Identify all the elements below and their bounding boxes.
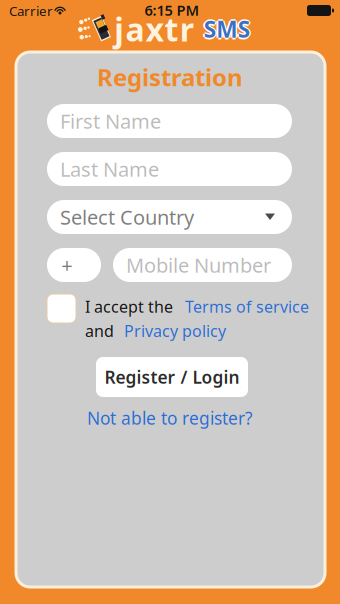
staticText: Carrier: [9, 2, 53, 20]
button[interactable]: +: [47, 248, 101, 282]
button[interactable]: Mobile Number: [113, 248, 292, 282]
staticText: SMS: [204, 12, 250, 42]
staticText: Terms of service: [185, 296, 309, 317]
button[interactable]: Not able to register?: [15, 408, 325, 428]
staticText: Not able to register?: [87, 406, 253, 429]
button[interactable]: Terms of service: [185, 296, 309, 317]
button[interactable]: First Name: [47, 104, 292, 138]
staticText: 6:15 PM: [144, 0, 199, 20]
staticText: +: [61, 252, 72, 278]
button[interactable]: Last Name: [47, 152, 292, 186]
button[interactable]: Accept terms checkbox: [47, 294, 76, 323]
staticText: Last Name: [60, 156, 159, 182]
staticText: Registration: [97, 61, 243, 93]
button[interactable]: Privacy policy: [124, 320, 226, 341]
staticText: and: [85, 320, 114, 341]
staticText: Mobile Number: [126, 252, 271, 278]
staticText: SMS: [202, 14, 248, 44]
staticText: First Name: [60, 108, 161, 134]
staticText: jaxtr: [114, 8, 194, 50]
staticText: Register / Login: [104, 365, 239, 388]
staticText: SMS: [205, 14, 251, 44]
staticText: Select Country: [60, 204, 194, 230]
staticText: SMS: [204, 15, 250, 46]
staticText: Privacy policy: [124, 320, 226, 341]
button[interactable]: Register / Login: [96, 357, 248, 397]
staticText: I accept the: [85, 296, 173, 317]
button[interactable]: Select Country: [47, 200, 292, 234]
staticText: SMS: [204, 14, 250, 44]
